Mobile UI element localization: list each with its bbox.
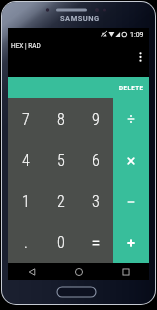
button[interactable]: 3 <box>78 181 113 222</box>
button[interactable]: . <box>8 222 43 263</box>
staticText: 1 <box>22 192 30 211</box>
staticText: 4 <box>22 151 30 170</box>
staticText: 6 <box>92 151 100 170</box>
button[interactable]: More options <box>131 47 149 67</box>
button[interactable]: 2 <box>43 181 78 222</box>
staticText: 9 <box>92 110 100 129</box>
button[interactable]: Back <box>8 263 55 280</box>
staticText: 2 <box>57 192 65 211</box>
button[interactable]: DELETE <box>119 84 149 91</box>
button[interactable]: 5 <box>43 140 78 181</box>
button[interactable]: divide <box>113 98 149 140</box>
button[interactable]: 1 <box>8 181 43 222</box>
button[interactable]: Recent apps <box>102 263 149 280</box>
staticText: . <box>24 233 28 252</box>
staticText: 0 <box>57 233 65 252</box>
staticText: 7 <box>22 110 30 129</box>
staticText: DELETE <box>119 84 144 91</box>
button[interactable]: multiply <box>113 140 149 181</box>
staticText: 8 <box>57 110 65 129</box>
button[interactable]: plus <box>113 222 149 263</box>
staticText: SAMSUNG <box>60 14 100 23</box>
staticText: 1:09 <box>130 31 144 39</box>
button[interactable]: 9 <box>78 98 113 140</box>
button[interactable]: 0 <box>43 222 78 263</box>
button[interactable]: 6 <box>78 140 113 181</box>
staticText: 3 <box>92 192 100 211</box>
staticText: 5 <box>57 151 65 170</box>
button[interactable]: equals <box>78 222 113 263</box>
button[interactable]: HEX | RAD <box>11 42 41 50</box>
button[interactable]: minus <box>113 181 149 222</box>
button[interactable]: 4 <box>8 140 43 181</box>
button[interactable]: 7 <box>8 98 43 140</box>
button[interactable]: 8 <box>43 98 78 140</box>
button[interactable]: Home <box>55 263 102 280</box>
